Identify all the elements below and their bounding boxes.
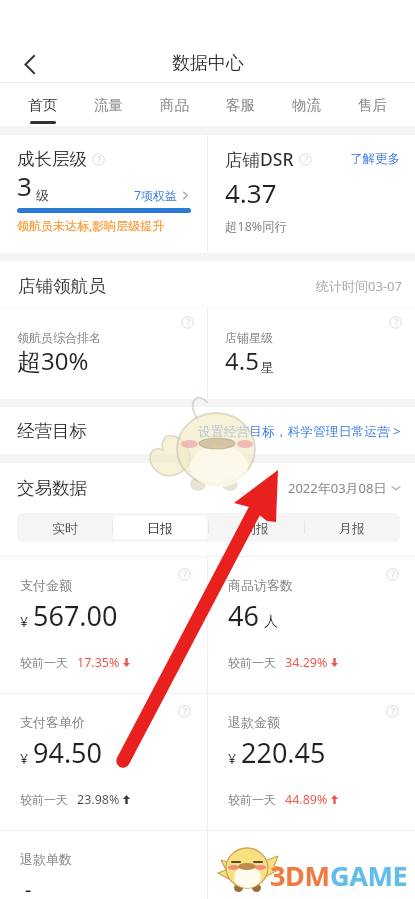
staticText: 流量 [94,96,123,114]
staticText: 交易数据 [17,477,87,499]
staticText: ? [97,154,101,165]
button[interactable]: Back [13,47,47,81]
button[interactable]: 经营目标 [0,407,415,454]
staticText: 成长层级 [17,148,87,170]
other: Help [299,153,312,166]
staticText: 领航员未达标,影响层级提升 [17,217,165,233]
staticText: 设置经营目标，科学管理日常运营 > [198,422,401,439]
staticText: 支付客单价 [20,714,85,730]
button[interactable]: 周报 [208,513,304,542]
button[interactable]: 退款单数 [0,831,207,899]
staticText: ? [391,569,395,580]
staticText: 3 [17,168,32,203]
staticText: ? [183,569,187,580]
button[interactable]: 支付金额 [0,557,207,693]
staticText: ¥ [20,612,29,631]
staticText: 超30% [17,344,89,377]
staticText: 统计时间03-07 [316,277,402,295]
staticText: 94.50 [33,734,103,771]
other: Help [178,568,191,581]
staticText: 220.45 [241,734,326,771]
other: Help [178,705,191,718]
staticText: 46 [228,597,259,634]
staticText: 客服 [226,96,255,114]
staticText: 7项权益 [134,187,177,203]
staticText: 退款单数 [20,851,72,867]
button[interactable]: 售后 [339,83,405,126]
other: Help [389,316,402,329]
staticText: ? [394,317,398,328]
staticText: 店铺星级 [225,330,273,345]
button[interactable]: 2022年03月08日 [288,479,401,497]
button[interactable]: 首页 [10,83,75,126]
staticText: 周报 [243,520,269,536]
staticText: 商品 [160,96,189,114]
button[interactable]: 实时 [17,513,112,542]
staticText: 3DM [270,857,330,894]
button[interactable]: 日报 [112,513,208,542]
staticText: ? [183,706,187,717]
staticText: 4.37 [225,175,277,210]
staticText: 经营目标 [17,420,87,442]
button[interactable]: 店铺星级 [208,308,415,399]
button[interactable]: 领航员综合排名 [0,308,207,399]
button[interactable]: 流量 [75,83,141,126]
staticText: 店铺领航员 [18,275,106,297]
staticText: 17.35% [77,654,120,671]
staticText: 较前一天 [228,655,276,670]
staticText: ? [391,706,395,717]
staticText: 较前一天 [20,792,68,807]
staticText: 店铺DSR [225,147,294,171]
button[interactable]: 月报 [304,513,400,542]
staticText: 2022年03月08日 [288,479,387,497]
staticText: 级 [36,187,49,203]
other: Help [181,316,194,329]
staticText: 数据中心 [172,52,244,75]
staticText: ? [304,154,308,165]
staticText: 超18%同行 [225,218,288,235]
staticText: ¥ [20,749,29,768]
staticText: - [25,876,32,899]
staticText: 月报 [339,520,365,536]
other: Help [386,705,399,718]
other: Help [386,568,399,581]
staticText: GAME [330,857,408,894]
staticText: 售后 [358,96,387,114]
other: Help [92,153,105,166]
staticText: 实时 [52,520,78,536]
button[interactable]: 成长层级 [0,135,207,253]
button[interactable]: 客服 [207,83,273,126]
button[interactable]: 退款金额 [208,694,415,830]
button[interactable]: 了解更多 [350,151,400,167]
staticText: 23.98% [77,791,120,808]
staticText: 34.29% [285,654,328,671]
staticText: 物流 [292,96,321,114]
staticText: 日报 [147,520,173,536]
staticText: 退款金额 [228,714,280,730]
staticText: 星 [261,359,274,375]
button[interactable]: 商品访客数 [208,557,415,693]
staticText: 人 [264,613,278,631]
staticText: 567.00 [33,597,118,634]
staticText: 支付金额 [20,577,72,593]
staticText: 商品访客数 [228,577,293,593]
button[interactable]: 商品 [141,83,207,126]
button[interactable]: 支付客单价 [0,694,207,830]
staticText: 较前一天 [228,792,276,807]
button[interactable]: 物流 [273,83,339,126]
staticText: 较前一天 [20,655,68,670]
staticText: 4.5 [225,344,259,377]
staticText: 首页 [28,96,57,114]
staticText: 领航员综合排名 [17,330,101,345]
button[interactable]: 店铺DSR [208,135,415,253]
button[interactable]: 7项权益 [134,187,191,203]
staticText: ¥ [228,749,237,768]
staticText: ? [186,317,190,328]
staticText: 44.89% [285,791,328,808]
